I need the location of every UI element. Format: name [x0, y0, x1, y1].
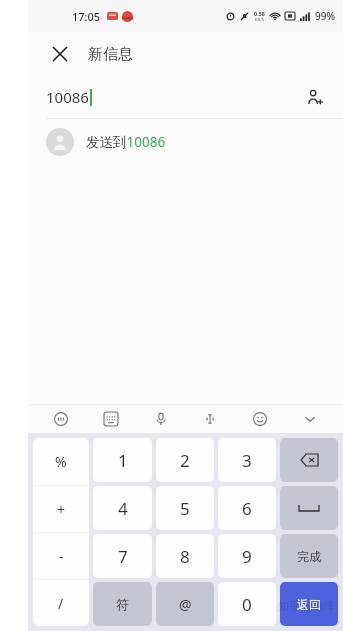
button[interactable]: 2	[156, 438, 214, 482]
button[interactable]: Keyboard	[94, 406, 128, 432]
staticText: 2	[180, 449, 190, 472]
staticText: 8	[180, 545, 190, 568]
staticText: 9	[242, 545, 252, 568]
staticText: 0.58	[254, 10, 265, 17]
staticText: KB/S	[255, 17, 264, 22]
button[interactable]: Voice input	[144, 406, 178, 432]
button[interactable]: Space	[280, 486, 338, 530]
button[interactable]: 0	[218, 582, 276, 626]
staticText: @	[179, 595, 192, 614]
button[interactable]: 4	[93, 486, 152, 530]
button[interactable]: 6	[218, 486, 276, 530]
button[interactable]: 1	[93, 438, 152, 482]
staticText: 返回	[297, 597, 321, 612]
staticText: 17:05	[72, 9, 101, 24]
button[interactable]: /	[33, 580, 89, 626]
staticText: 3	[242, 449, 252, 472]
staticText: 知乎 @临泽	[278, 598, 335, 613]
button[interactable]: Close	[44, 38, 76, 70]
button[interactable]: -	[33, 533, 89, 579]
staticText: -	[59, 547, 64, 566]
staticText: 完成	[297, 549, 321, 564]
button[interactable]: %	[33, 438, 89, 485]
button[interactable]: 8	[156, 534, 214, 578]
staticText: 符	[116, 596, 129, 612]
staticText: 7	[118, 545, 128, 568]
button[interactable]: @	[156, 582, 214, 626]
staticText: /	[58, 594, 64, 613]
button[interactable]: 5	[156, 486, 214, 530]
button[interactable]: 完成	[280, 534, 338, 578]
staticText: 发送到10086	[86, 133, 166, 151]
button[interactable]: 7	[93, 534, 152, 578]
staticText: %	[55, 452, 67, 471]
button[interactable]: 9	[218, 534, 276, 578]
button[interactable]: Backspace	[280, 438, 338, 482]
staticText: 6	[242, 497, 252, 520]
button[interactable]: 发送到10086	[28, 119, 343, 165]
staticText: 新信息	[88, 45, 133, 64]
staticText: +	[57, 500, 66, 519]
button[interactable]: +	[33, 486, 89, 532]
staticText: 4	[118, 497, 128, 520]
button[interactable]: Input method	[44, 406, 78, 432]
staticText: 99%	[315, 9, 335, 23]
staticText: 1	[118, 449, 128, 472]
button[interactable]: 返回	[280, 582, 338, 626]
button[interactable]: Add contact	[299, 82, 329, 112]
button[interactable]: 符	[93, 582, 152, 626]
button[interactable]: Emoji	[243, 406, 277, 432]
staticText: 0	[242, 593, 252, 616]
button[interactable]: Cursor control	[193, 406, 227, 432]
staticText: 5	[180, 497, 190, 520]
button[interactable]: Hide keyboard	[293, 406, 327, 432]
staticText: 10086	[46, 87, 89, 107]
button[interactable]: 3	[218, 438, 276, 482]
